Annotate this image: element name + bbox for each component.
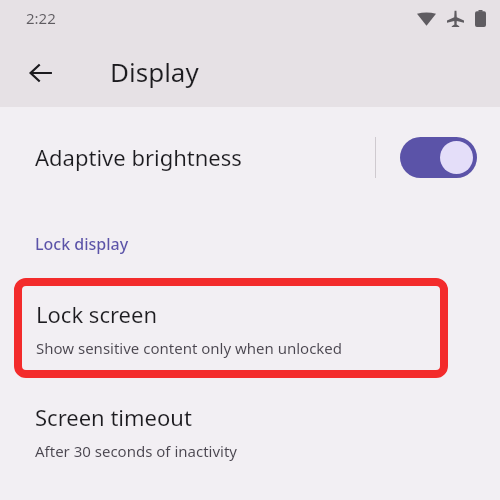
button[interactable]: Screen timeout: [0, 379, 500, 479]
staticText: After 30 seconds of inactivity: [35, 441, 238, 461]
button[interactable]: Back: [17, 49, 65, 97]
staticText: Show sensitive content only when unlocke…: [36, 338, 343, 358]
staticText: Display: [110, 54, 199, 89]
staticText: Screen timeout: [35, 402, 192, 432]
staticText: Lock display: [35, 233, 129, 255]
button[interactable]: Lock screen: [14, 278, 448, 378]
button[interactable]: Adaptive brightness toggle: [400, 137, 477, 178]
button[interactable]: Adaptive brightness: [0, 107, 500, 207]
staticText: Adaptive brightness: [35, 142, 242, 172]
staticText: Lock screen: [36, 299, 158, 329]
staticText: 2:22: [26, 8, 56, 28]
